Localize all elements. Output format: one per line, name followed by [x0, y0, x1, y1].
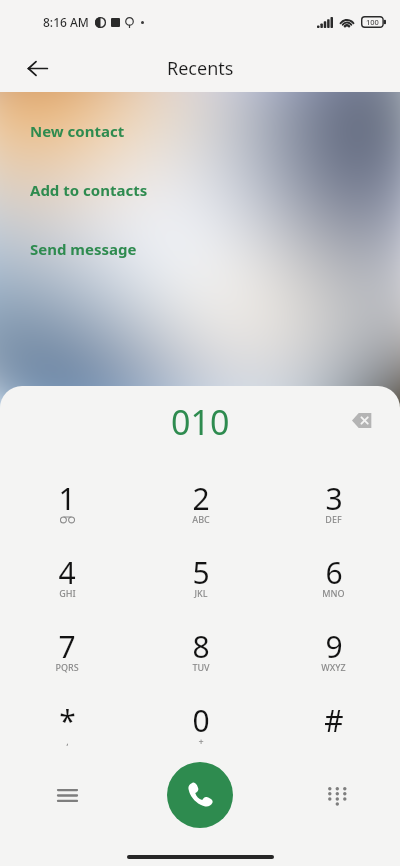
button[interactable]: 0	[134, 700, 267, 774]
staticText: New contact	[30, 121, 125, 141]
staticText: 6	[325, 552, 343, 593]
staticText: WXYZ	[321, 661, 346, 673]
staticText: 8	[192, 626, 210, 667]
button[interactable]: Send message	[0, 236, 400, 262]
staticText: ,	[66, 735, 69, 747]
staticText: +	[198, 735, 204, 747]
button[interactable]: #	[267, 700, 400, 774]
button[interactable]: 3	[267, 478, 400, 552]
button[interactable]: 8	[134, 626, 267, 700]
staticText: 8:16 AM	[43, 14, 89, 30]
button[interactable]: *	[0, 700, 134, 774]
staticText: Recents	[167, 56, 234, 81]
staticText: 9	[325, 626, 343, 667]
button[interactable]: New contact	[0, 118, 400, 144]
staticText: Send message	[30, 239, 137, 259]
staticText: PQRS	[55, 661, 79, 673]
staticText: 010	[171, 399, 230, 445]
staticText: 0	[192, 700, 210, 741]
staticText: MNO	[322, 587, 345, 599]
staticText: 7	[58, 626, 76, 667]
button[interactable]: 9	[267, 626, 400, 700]
button[interactable]: Backspace	[342, 400, 382, 440]
staticText: TUV	[192, 661, 210, 673]
staticText: Add to contacts	[30, 180, 148, 200]
staticText: ABC	[192, 513, 210, 525]
button[interactable]: 5	[134, 552, 267, 626]
button[interactable]: Back	[19, 50, 55, 86]
button[interactable]: Call	[167, 762, 233, 828]
button[interactable]: 4	[0, 552, 134, 626]
button[interactable]: 7	[0, 626, 134, 700]
button[interactable]: Add to contacts	[0, 177, 400, 203]
staticText: DEF	[325, 513, 342, 525]
staticText: 1	[58, 478, 76, 519]
staticText: JKL	[194, 587, 208, 599]
staticText: 3	[325, 478, 343, 519]
staticText: *	[59, 700, 76, 741]
button[interactable]: 2	[134, 478, 267, 552]
staticText: 100	[366, 17, 379, 27]
staticText: GHI	[59, 587, 76, 599]
button[interactable]: 1	[0, 478, 134, 552]
button[interactable]: Call log	[46, 774, 88, 816]
staticText: 4	[58, 552, 76, 593]
staticText: 5	[192, 552, 210, 593]
staticText: #	[324, 700, 344, 741]
button[interactable]: 6	[267, 552, 400, 626]
staticText: 2	[192, 478, 210, 519]
button[interactable]: Dialpad	[314, 774, 356, 816]
